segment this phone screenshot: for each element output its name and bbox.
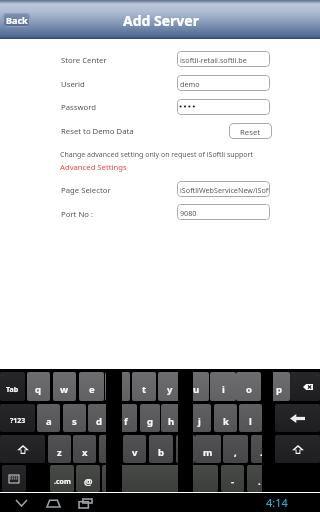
button[interactable]: ?123 [0, 404, 35, 432]
button[interactable]: Enter [275, 404, 320, 432]
button[interactable]: . [251, 435, 272, 463]
staticText: Tab [6, 385, 19, 395]
staticText: u [193, 383, 200, 396]
button[interactable]: a [37, 404, 60, 432]
staticText: j [198, 415, 201, 428]
staticText: p [276, 383, 283, 396]
button[interactable]: z [48, 435, 71, 463]
staticText: iSoftliWebServiceNew/iSoftl [180, 185, 270, 195]
staticText: m [203, 446, 213, 459]
button[interactable]: .com [50, 465, 74, 492]
button[interactable]: i [210, 372, 236, 401]
staticText: , [234, 446, 237, 459]
button[interactable]: j [187, 404, 211, 432]
staticText: t [142, 383, 147, 396]
staticText: x [82, 446, 88, 459]
button[interactable]: p [268, 372, 290, 401]
staticText: . [258, 475, 261, 488]
button[interactable]: . [247, 465, 271, 492]
button[interactable]: demo [177, 75, 270, 91]
staticText: Userid [61, 79, 85, 90]
button[interactable]: Advanced Settings [60, 162, 127, 172]
staticText: Reset to Demo Data [61, 126, 134, 137]
staticText: Password [61, 102, 97, 113]
staticText: Change advanced setting only on request … [60, 150, 253, 160]
button[interactable]: v [123, 435, 146, 463]
staticText: s [72, 415, 77, 428]
button[interactable]: Backspace [290, 372, 320, 401]
staticText: y [167, 383, 173, 396]
staticText: h [168, 415, 175, 428]
other: Shift [292, 445, 304, 454]
staticText: - [231, 475, 235, 488]
button[interactable]: t [132, 372, 156, 401]
staticText: Back [6, 14, 28, 26]
button[interactable]: d [88, 404, 111, 432]
button[interactable]: q [27, 372, 50, 401]
button[interactable]: f [114, 404, 137, 432]
staticText: w [60, 383, 69, 396]
button[interactable]: c [99, 435, 122, 463]
button[interactable]: Tab [0, 372, 25, 401]
staticText: g [147, 415, 154, 428]
button[interactable]: Home [42, 496, 64, 510]
staticText: v [132, 446, 138, 459]
staticText: z [57, 446, 62, 459]
staticText: Reset [240, 127, 261, 138]
button[interactable] [120, 465, 218, 492]
button[interactable]: y [158, 372, 182, 401]
button[interactable]: s [63, 404, 86, 432]
staticText: Port No : [61, 209, 94, 220]
button[interactable]: b [149, 435, 173, 463]
button[interactable]: Shift [275, 435, 320, 463]
button[interactable]: Reset [229, 123, 272, 139]
button[interactable]: l [239, 404, 262, 432]
button[interactable]: , [223, 435, 248, 463]
staticText: Page Selector [61, 185, 111, 196]
staticText: b [158, 446, 165, 459]
staticText: e [89, 383, 95, 396]
staticText: @ [84, 475, 93, 488]
button[interactable]: w [53, 372, 76, 401]
other: Backspace [303, 384, 313, 390]
staticText: . [260, 446, 263, 459]
button[interactable]: g [140, 404, 160, 432]
staticText: q [35, 383, 42, 396]
staticText: l [249, 415, 252, 428]
button[interactable]: m [195, 435, 221, 463]
button[interactable]: / [102, 465, 120, 492]
button[interactable]: u [184, 372, 209, 401]
button[interactable]: e [79, 372, 104, 401]
button[interactable] [177, 99, 270, 115]
button[interactable]: r [105, 372, 130, 401]
other: Shift [17, 445, 29, 454]
staticText: 4:14 [266, 495, 288, 510]
button[interactable]: Switch keyboard [2, 465, 26, 492]
button[interactable]: n [176, 435, 195, 463]
staticText: o [246, 383, 252, 396]
button[interactable]: Recents [74, 496, 96, 510]
button[interactable]: x [73, 435, 96, 463]
other: Switch keyboard [9, 475, 19, 483]
button[interactable]: isoftli-retail.softli.be [177, 51, 270, 67]
staticText: d [96, 415, 103, 428]
button[interactable]: 9080 [177, 204, 270, 220]
button[interactable]: Back [10, 496, 32, 510]
staticText: demo [180, 79, 200, 89]
button[interactable]: Shift [0, 435, 45, 463]
button[interactable]: Back [3, 13, 30, 27]
staticText: .com [54, 477, 71, 487]
staticText: Add Server [123, 11, 199, 30]
button[interactable]: iSoftliWebServiceNew/iSoftl [177, 181, 270, 197]
button[interactable]: h [161, 404, 182, 432]
staticText: i [222, 383, 225, 396]
staticText: isoftli-retail.softli.be [180, 55, 247, 65]
staticText: a [46, 415, 52, 428]
button[interactable]: o [236, 372, 261, 401]
button[interactable]: - [221, 465, 244, 492]
button[interactable]: @ [76, 465, 100, 492]
button[interactable]: k [214, 404, 237, 432]
